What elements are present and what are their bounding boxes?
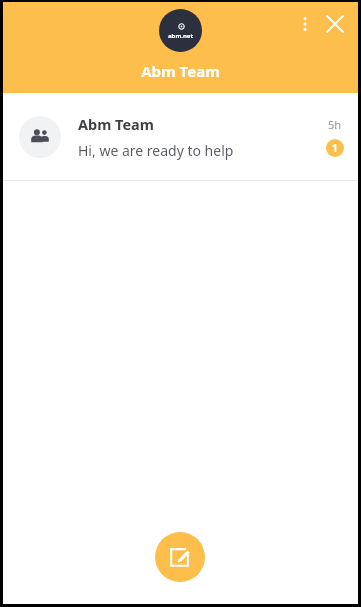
button[interactable]: Abm Team [3,93,358,180]
staticText: abm.net [168,32,194,40]
staticText: Hi, we are ready to help [78,141,234,160]
staticText: Abm Team [141,61,220,81]
button[interactable]: Close [320,9,350,39]
staticText: 1 [332,141,338,155]
staticText: Abm Team [78,114,154,134]
button[interactable]: New conversation [155,532,205,582]
button[interactable]: More options [291,10,319,38]
staticText: 5h [328,117,342,132]
